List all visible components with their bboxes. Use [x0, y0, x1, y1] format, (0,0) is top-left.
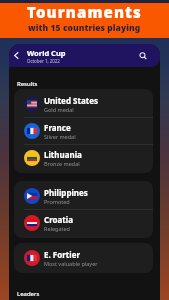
staticText: Croatia: [44, 214, 73, 225]
staticText: Results: [17, 80, 38, 88]
button[interactable]: Lithuania: [14, 145, 153, 171]
staticText: Leaders: [17, 290, 40, 298]
button[interactable]: United States: [14, 91, 153, 117]
button[interactable]: E. Fortier: [14, 245, 153, 271]
staticText: E. Fortier: [44, 249, 80, 260]
staticText: Tournaments: [27, 2, 142, 22]
button[interactable]: Back: [11, 50, 22, 61]
staticText: Philippines: [44, 187, 88, 198]
staticText: with 15 countries playing: [28, 22, 141, 34]
staticText: Relegated: [44, 225, 70, 232]
staticText: United States: [44, 95, 98, 106]
staticText: Lithuania: [44, 149, 82, 160]
staticText: Promoted: [44, 198, 70, 205]
staticText: France: [44, 122, 71, 133]
staticText: World Cup: [27, 48, 66, 58]
staticText: Most valuable player: [44, 260, 98, 267]
button[interactable]: Philippines: [14, 183, 153, 209]
button[interactable]: Search: [137, 50, 149, 62]
button[interactable]: Croatia: [14, 210, 153, 236]
staticText: Silver medal: [44, 133, 76, 140]
staticText: October 1, 2022: [27, 58, 60, 64]
staticText: Bronze medal: [44, 160, 80, 167]
staticText: Gold medal: [44, 106, 74, 113]
button[interactable]: France: [14, 118, 153, 144]
